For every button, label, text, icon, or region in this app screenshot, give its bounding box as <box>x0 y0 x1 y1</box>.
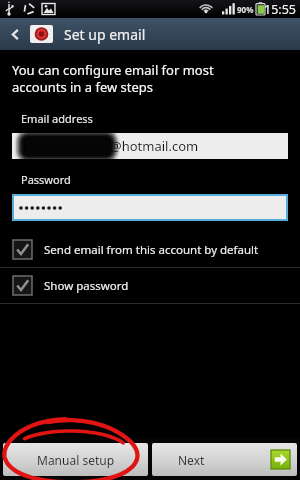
button[interactable]: Manual setup <box>3 443 148 476</box>
staticText: Send email from this account by default <box>44 242 259 258</box>
button[interactable] <box>14 196 286 219</box>
staticText: Next <box>178 452 205 468</box>
button[interactable]: @hotmail.com <box>12 133 288 159</box>
button[interactable]: Send email from this account by default <box>0 232 300 268</box>
button[interactable]: Back <box>0 18 30 50</box>
staticText: Manual setup <box>37 452 115 468</box>
staticText: Set up email <box>64 25 146 44</box>
staticText: Password <box>21 172 71 187</box>
staticText: @hotmail.com <box>110 137 199 155</box>
button[interactable]: Next <box>152 443 297 476</box>
staticText: You can configure email for most account… <box>12 61 214 96</box>
staticText: Email address <box>21 111 93 126</box>
button[interactable]: Show password <box>0 268 300 304</box>
staticText: 15:55 <box>264 1 296 18</box>
staticText: Show password <box>44 278 129 294</box>
staticText: 90% <box>237 4 254 15</box>
